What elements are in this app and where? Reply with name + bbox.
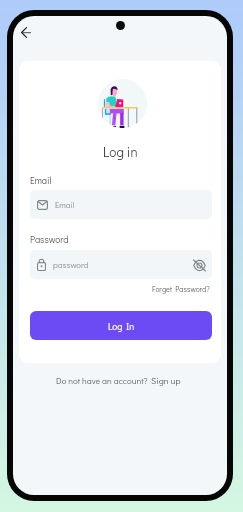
- button[interactable]: Do not have an account?: [56, 375, 181, 387]
- staticText: Do not have an account?: [56, 375, 148, 387]
- staticText: Forget Password?: [152, 284, 210, 294]
- button[interactable]: Back: [14, 20, 38, 44]
- staticText: Sign up: [151, 375, 181, 387]
- staticText: password: [53, 259, 89, 270]
- staticText: Password: [30, 233, 69, 245]
- button[interactable]: Show password: [191, 257, 207, 273]
- staticText: Email: [55, 199, 75, 210]
- staticText: Email: [30, 174, 52, 186]
- button[interactable]: Forget Password?: [152, 284, 210, 294]
- staticText: Log in: [103, 143, 138, 160]
- button[interactable]: Email: [30, 190, 212, 219]
- button[interactable]: password: [30, 250, 212, 279]
- button[interactable]: Log In: [30, 311, 212, 340]
- staticText: Log In: [108, 320, 135, 332]
